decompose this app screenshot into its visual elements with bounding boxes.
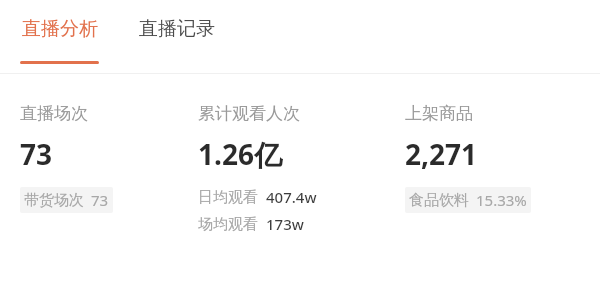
button[interactable]: 直播分析 xyxy=(20,0,99,64)
staticText: 173w xyxy=(266,214,304,234)
staticText: 73 xyxy=(20,135,53,173)
staticText: 1.26亿 xyxy=(198,135,282,173)
staticText: 日均观看 xyxy=(198,188,258,207)
staticText: 直播场次 xyxy=(20,103,88,124)
staticText: 407.4w xyxy=(266,187,317,207)
button[interactable]: 直播记录 xyxy=(139,0,215,41)
staticText: 直播记录 xyxy=(139,17,215,41)
staticText: 场均观看 xyxy=(198,215,258,234)
staticText: 直播分析 xyxy=(22,17,98,41)
staticText: 食品饮料 xyxy=(409,191,469,210)
staticText: 15.33% xyxy=(476,190,527,210)
staticText: 2,271 xyxy=(405,135,478,173)
staticText: 上架商品 xyxy=(405,103,473,124)
staticText: 73 xyxy=(91,190,109,210)
staticText: 累计观看人次 xyxy=(198,103,300,124)
staticText: 带货场次 xyxy=(24,191,84,210)
